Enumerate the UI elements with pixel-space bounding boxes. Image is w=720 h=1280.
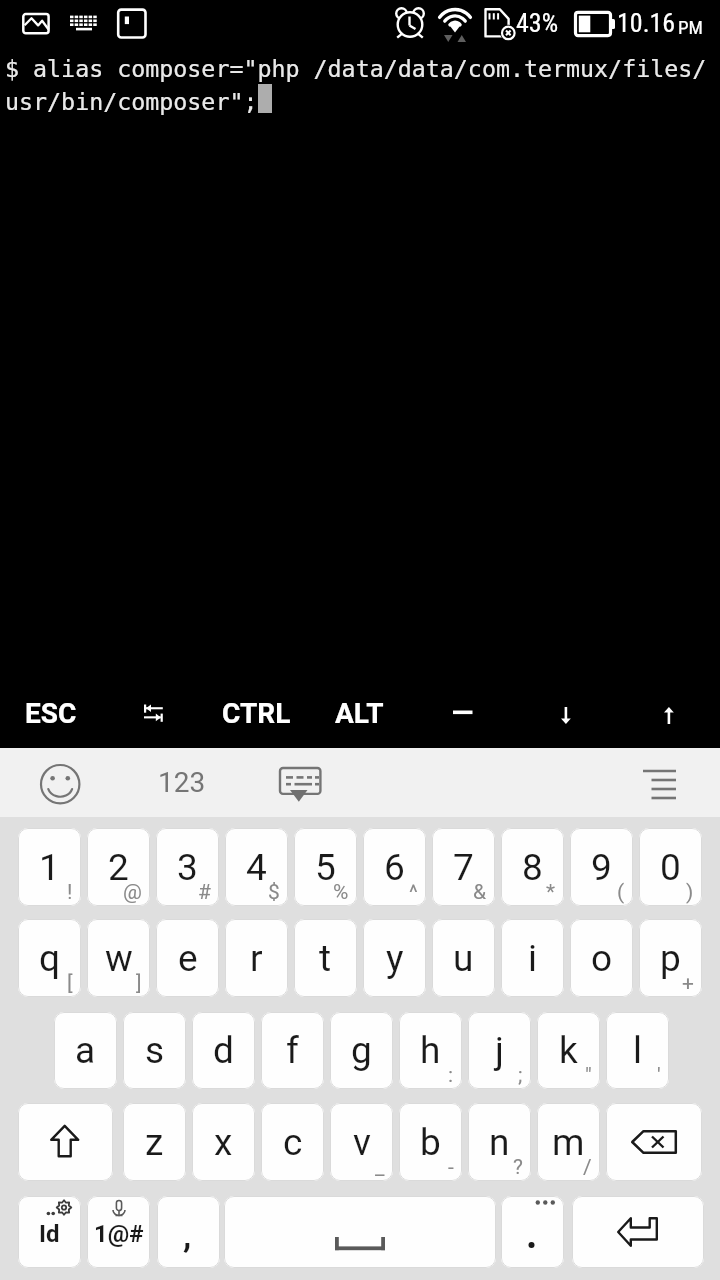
staticText: ALT	[335, 697, 384, 730]
other: Tab	[144, 704, 164, 722]
staticText: (	[617, 880, 625, 905]
button[interactable]: b	[399, 1103, 462, 1181]
button[interactable]: 4	[225, 828, 288, 906]
other: Minus	[453, 701, 473, 725]
other: Up	[664, 707, 674, 729]
staticText: :	[448, 1063, 454, 1088]
staticText: 7	[453, 846, 474, 889]
button[interactable]: Space	[224, 1196, 496, 1268]
button[interactable]: d	[192, 1012, 255, 1089]
button[interactable]: 9	[570, 828, 633, 906]
staticText: *	[546, 880, 556, 905]
staticText: PM	[678, 16, 703, 38]
staticText: ESC	[25, 697, 77, 730]
button[interactable]: ESC	[0, 678, 102, 748]
button[interactable]: y	[363, 919, 426, 997]
staticText: z	[145, 1121, 164, 1164]
other: Enter	[617, 1217, 659, 1247]
button[interactable]: Menu	[630, 748, 720, 817]
staticText: 5	[315, 846, 336, 889]
button[interactable]: h	[399, 1012, 462, 1089]
button[interactable]: r	[225, 919, 288, 997]
button[interactable]: Emoji	[26, 748, 94, 817]
staticText: CTRL	[222, 697, 291, 730]
staticText: #	[198, 880, 211, 905]
other: Down	[561, 707, 571, 729]
staticText: 1@#	[94, 1220, 144, 1248]
staticText: 10.16	[617, 8, 676, 38]
staticText: p	[660, 937, 681, 980]
staticText: n	[489, 1121, 510, 1164]
button[interactable]: p	[639, 919, 702, 997]
button[interactable]: 6	[363, 828, 426, 906]
staticText: x	[214, 1121, 233, 1164]
staticText: /	[583, 1155, 592, 1180]
button[interactable]: 5	[294, 828, 357, 906]
button[interactable]: m	[537, 1103, 600, 1181]
button[interactable]: 1	[18, 828, 81, 906]
staticText: @	[123, 880, 142, 905]
button[interactable]: t	[294, 919, 357, 997]
button[interactable]: 7	[432, 828, 495, 906]
button[interactable]: o	[570, 919, 633, 997]
staticText: $ alias composer="php /data/data/com.ter…	[5, 55, 707, 82]
button[interactable]: e	[156, 919, 219, 997]
button[interactable]: 3	[156, 828, 219, 906]
button[interactable]: Tab	[102, 678, 205, 748]
button[interactable]: c	[261, 1103, 324, 1181]
staticText: s	[145, 1029, 165, 1072]
staticText: 123	[158, 766, 206, 799]
button[interactable]: l	[606, 1012, 669, 1089]
button[interactable]: Symbols	[87, 1196, 150, 1268]
button[interactable]: u	[432, 919, 495, 997]
staticText: 1	[39, 846, 60, 889]
button[interactable]: Arrow up	[617, 678, 720, 748]
button[interactable]: f	[261, 1012, 324, 1089]
button[interactable]: Enter	[572, 1196, 704, 1268]
button[interactable]: CTRL	[205, 678, 308, 748]
staticText: [	[67, 971, 73, 996]
staticText: y	[386, 937, 404, 980]
button[interactable]: ALT	[308, 678, 411, 748]
staticText: b	[420, 1121, 441, 1164]
button[interactable]: g	[330, 1012, 393, 1089]
button[interactable]: q	[18, 919, 81, 997]
staticText: h	[420, 1029, 441, 1072]
button[interactable]: s	[123, 1012, 186, 1089]
button[interactable]: j	[468, 1012, 531, 1089]
button[interactable]: Arrow down	[514, 678, 617, 748]
button[interactable]: n	[468, 1103, 531, 1181]
button[interactable]: Minus	[411, 678, 514, 748]
staticText: 8	[522, 846, 543, 889]
staticText: w	[105, 937, 133, 980]
staticText: ]	[136, 971, 142, 996]
staticText: j	[495, 1029, 504, 1072]
staticText: Id	[39, 1220, 60, 1248]
button[interactable]: 123	[144, 748, 220, 817]
button[interactable]: z	[123, 1103, 186, 1181]
button[interactable]: Backspace	[606, 1103, 702, 1181]
staticText: 6	[384, 846, 405, 889]
staticText: ?	[513, 1155, 523, 1180]
button[interactable]: a	[54, 1012, 117, 1089]
staticText: q	[39, 937, 61, 980]
button[interactable]: 8	[501, 828, 564, 906]
button[interactable]: w	[87, 919, 150, 997]
button[interactable]: Language and settings	[18, 1196, 81, 1268]
button[interactable]: Hide keyboard	[266, 748, 334, 817]
staticText: +	[682, 971, 694, 996]
button[interactable]: v	[330, 1103, 393, 1181]
button[interactable]: x	[192, 1103, 255, 1181]
staticText: o	[591, 937, 613, 980]
button[interactable]: i	[501, 919, 564, 997]
button[interactable]: 0	[639, 828, 702, 906]
staticText: 0	[660, 846, 681, 889]
staticText: m	[552, 1121, 585, 1164]
button[interactable]: Period	[501, 1196, 564, 1268]
button[interactable]: 2	[87, 828, 150, 906]
button[interactable]: Shift	[18, 1103, 113, 1181]
button[interactable]: Comma	[157, 1196, 220, 1268]
staticText: c	[283, 1121, 303, 1164]
staticText: g	[351, 1029, 372, 1072]
button[interactable]: k	[537, 1012, 600, 1089]
